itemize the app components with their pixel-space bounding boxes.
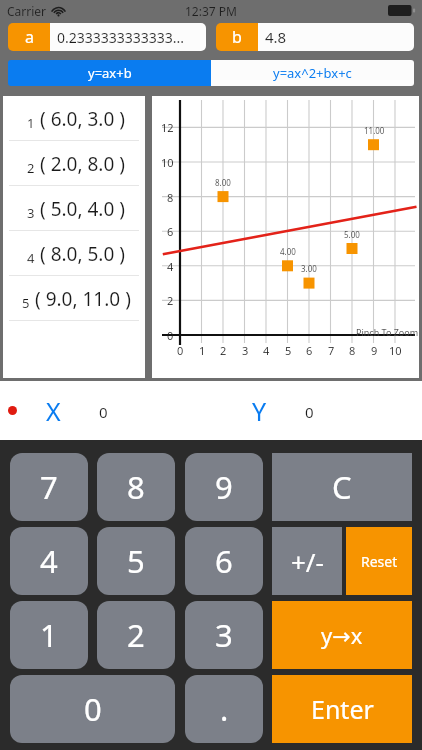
button[interactable]: .	[185, 675, 263, 743]
button[interactable]: 1	[3, 96, 145, 141]
staticText: 7	[328, 343, 335, 358]
button[interactable]: +/-	[272, 527, 342, 595]
button[interactable]: 5	[3, 276, 145, 321]
staticText: 6	[167, 224, 174, 239]
button[interactable]: 2	[3, 141, 145, 186]
staticText: 1	[40, 614, 58, 656]
staticText: 12:37 PM	[185, 3, 237, 19]
staticText: C	[332, 466, 352, 508]
button[interactable]: 1	[10, 601, 88, 669]
staticText: 8	[349, 343, 356, 358]
staticText: 4	[27, 249, 35, 267]
staticText: .	[220, 688, 229, 730]
staticText: 3	[242, 343, 249, 358]
staticText: 0	[99, 402, 108, 422]
button[interactable]: 2	[97, 601, 175, 669]
staticText: +/-	[291, 544, 324, 579]
staticText: ( 6.0, 3.0 )	[40, 106, 125, 132]
staticText: 1	[27, 114, 35, 132]
staticText: 3	[27, 204, 35, 222]
staticText: 6	[215, 540, 233, 582]
button[interactable]: y→x	[272, 601, 412, 669]
staticText: y=ax^2+bx+c	[273, 64, 352, 82]
staticText: 0	[177, 343, 184, 358]
button[interactable]: y=ax+b	[8, 60, 211, 86]
button[interactable]: 9	[185, 453, 263, 521]
button[interactable]: 3	[3, 186, 145, 231]
staticText: Reset	[361, 552, 398, 571]
button[interactable]: Enter	[272, 675, 412, 743]
staticText: 9	[371, 343, 378, 358]
staticText: 4.00	[280, 246, 296, 257]
staticText: 10	[389, 343, 402, 358]
staticText: 8	[127, 466, 145, 508]
staticText: 11.00	[364, 125, 385, 136]
staticText: 8	[167, 190, 174, 205]
other: Point marker	[8, 406, 17, 415]
button[interactable]: 7	[10, 453, 88, 521]
button[interactable]: b	[216, 23, 414, 51]
staticText: 7	[40, 466, 58, 508]
button[interactable]: 4	[3, 231, 145, 276]
staticText: 1	[199, 343, 206, 358]
staticText: 4.8	[265, 27, 287, 47]
staticText: 5	[285, 343, 292, 358]
staticText: 12	[161, 120, 174, 135]
staticText: 0.2333333333333...	[57, 28, 185, 47]
staticText: 4	[167, 259, 174, 274]
staticText: ( 2.0, 8.0 )	[40, 151, 125, 177]
staticText: 0	[305, 402, 314, 422]
staticText: X	[46, 394, 61, 428]
staticText: 3	[215, 614, 233, 656]
staticText: y→x	[321, 620, 363, 650]
staticText: 0	[167, 328, 174, 343]
staticText: Enter	[311, 692, 374, 726]
button[interactable]: C	[272, 453, 412, 521]
staticText: 10	[161, 155, 174, 170]
button[interactable]: 3	[185, 601, 263, 669]
button[interactable]: Y	[252, 394, 267, 428]
button[interactable]: X	[46, 394, 61, 428]
button[interactable]: 0	[10, 675, 175, 743]
staticText: a	[25, 26, 34, 48]
staticText: 2	[27, 159, 35, 177]
staticText: Pinch To Zoom	[356, 326, 419, 338]
staticText: ( 9.0, 11.0 )	[35, 286, 131, 312]
staticText: 2	[127, 614, 145, 656]
staticText: 5	[127, 540, 145, 582]
staticText: 4	[40, 540, 58, 582]
button[interactable]: y=ax^2+bx+c	[211, 60, 414, 86]
staticText: 3.00	[301, 263, 317, 274]
staticText: 0	[84, 688, 102, 730]
staticText: 2	[220, 343, 227, 358]
staticText: 8.00	[215, 177, 231, 188]
staticText: 5	[22, 294, 30, 312]
staticText: 6	[306, 343, 313, 358]
staticText: b	[232, 26, 242, 48]
button[interactable]: a	[8, 23, 206, 51]
staticText: ( 5.0, 4.0 )	[40, 196, 125, 222]
staticText: ( 8.0, 5.0 )	[40, 241, 125, 267]
staticText: Carrier	[7, 3, 47, 19]
button[interactable]: 5	[97, 527, 175, 595]
button[interactable]: Reset	[346, 527, 412, 595]
staticText: Y	[252, 394, 267, 428]
button[interactable]: 6	[185, 527, 263, 595]
staticText: 9	[215, 466, 233, 508]
button[interactable]: 4	[10, 527, 88, 595]
staticText: 5.00	[344, 229, 360, 240]
staticText: y=ax+b	[88, 64, 132, 82]
staticText: 2	[167, 293, 174, 308]
button[interactable]: 8	[97, 453, 175, 521]
staticText: 4	[263, 343, 270, 358]
